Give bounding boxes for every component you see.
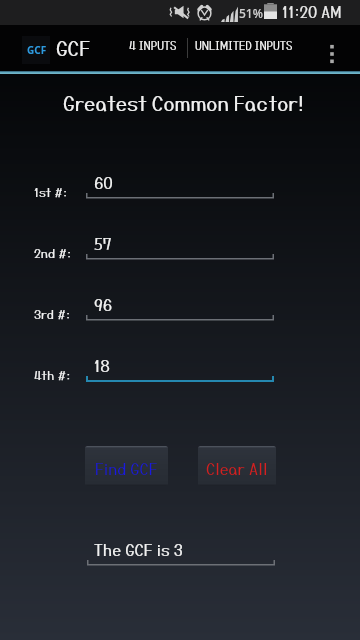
staticText: 1st #: [34,185,68,200]
button[interactable]: Find GCF [85,446,168,486]
staticText: GCF [27,43,47,57]
button[interactable]: 4 INPUTS [120,29,186,62]
staticText: The GCF is 3 [94,540,183,559]
staticText: 3rd #: [34,307,71,322]
staticText: Find GCF [95,459,158,478]
other: Signal strength [221,6,238,22]
button[interactable]: Clear All [198,446,276,486]
staticText: 4 INPUTS [129,39,177,52]
other: Battery 51 percent [264,3,277,19]
staticText: UNLIMITED INPUTS [195,39,293,52]
button[interactable]: UNLIMITED INPUTS [186,29,302,62]
button[interactable]: The GCF is 3 [87,534,275,568]
button[interactable]: 60 [86,167,274,201]
staticText: 51% [239,5,263,21]
button[interactable]: 96 [86,289,274,323]
button[interactable]: 18 [86,350,274,384]
staticText: 4th #: [34,368,71,383]
staticText: 96 [94,295,113,314]
staticText: 57 [94,234,112,253]
other: Alarm set [196,5,213,20]
staticText: Greatest Common Factor! [63,91,304,115]
button[interactable]: More options [312,28,352,68]
other: Sound off, vibrate [167,5,190,19]
staticText: 60 [94,173,113,192]
staticText: 18 [94,356,110,375]
staticText: 11:20 AM [282,3,342,21]
staticText: GCF [56,36,91,60]
staticText: Clear All [206,459,268,478]
button[interactable]: 57 [86,228,274,262]
staticText: 2nd #: [34,246,72,261]
